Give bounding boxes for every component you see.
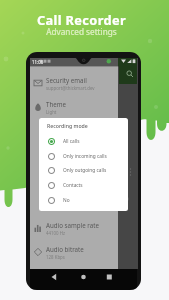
staticText: Recording mode <box>47 122 88 129</box>
staticText: 11:06 <box>32 59 44 65</box>
button[interactable]: Only outgoing calls <box>39 163 128 177</box>
button[interactable]: Theme <box>30 100 117 119</box>
staticText: Advanced settings <box>0 26 166 37</box>
button[interactable]: Audio sample rate <box>30 221 117 240</box>
staticText: 128 Kbps <box>46 254 65 260</box>
button[interactable]: Contacts <box>39 178 128 192</box>
staticText: Call Recorder <box>0 11 166 28</box>
staticText: Theme <box>46 100 67 108</box>
staticText: All calls <box>63 138 80 145</box>
staticText: Light <box>46 109 57 115</box>
staticText: Audio bitrate <box>46 245 84 253</box>
staticText: Contacts <box>63 182 83 189</box>
button[interactable]: Audio bitrate <box>30 245 117 264</box>
staticText: Audio sample rate <box>46 221 99 229</box>
staticText: 44100 Hz <box>46 230 66 236</box>
button[interactable]: Search <box>126 70 134 78</box>
staticText: support@thickmart.dev <box>46 85 95 91</box>
button[interactable]: No <box>39 193 128 207</box>
staticText: Only incoming calls <box>63 153 107 160</box>
staticText: Only outgoing calls <box>63 167 107 174</box>
button[interactable]: All calls <box>39 134 128 148</box>
button[interactable]: Only incoming calls <box>39 149 128 163</box>
staticText: No <box>63 197 70 204</box>
button[interactable]: Security email <box>30 76 117 95</box>
staticText: Security email <box>46 76 87 84</box>
